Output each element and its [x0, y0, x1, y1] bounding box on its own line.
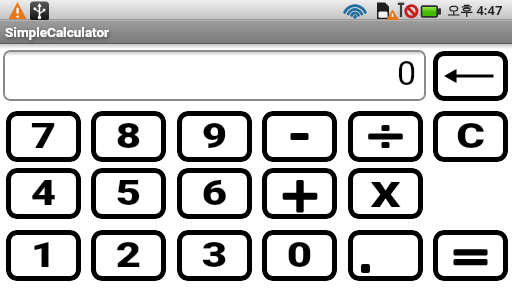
staticText: 5 [115, 173, 142, 214]
button[interactable] [433, 230, 508, 281]
staticText: 0 [286, 235, 313, 276]
button[interactable] [433, 51, 508, 101]
staticText: 1 [30, 235, 57, 276]
button[interactable] [262, 111, 337, 162]
staticText: C [456, 116, 485, 157]
staticText: 2 [115, 235, 142, 276]
button[interactable]: 0 [3, 50, 426, 101]
staticText: 6 [201, 173, 228, 214]
staticText: 오후 4:47 [447, 1, 503, 19]
button[interactable]: 9 [177, 111, 252, 162]
button[interactable] [348, 111, 423, 162]
button[interactable]: X [348, 168, 423, 219]
button[interactable]: 2 [91, 230, 166, 281]
staticText: 8 [115, 116, 142, 157]
staticText: 3 [201, 235, 228, 276]
button[interactable]: C [433, 111, 508, 162]
staticText: 4 [30, 173, 57, 214]
button[interactable]: 8 [91, 111, 166, 162]
staticText: 7 [30, 116, 57, 157]
button[interactable] [262, 168, 337, 219]
staticText: X [370, 175, 401, 216]
button[interactable]: 4 [6, 168, 81, 219]
button[interactable]: 6 [177, 168, 252, 219]
staticText: SimpleCalculator [5, 24, 110, 40]
button[interactable]: 1 [6, 230, 81, 281]
button[interactable] [348, 230, 423, 281]
button[interactable]: 5 [91, 168, 166, 219]
staticText: 9 [201, 116, 228, 157]
button[interactable]: 7 [6, 111, 81, 162]
staticText: 0 [397, 53, 417, 93]
button[interactable]: 0 [262, 230, 337, 281]
button[interactable]: 3 [177, 230, 252, 281]
